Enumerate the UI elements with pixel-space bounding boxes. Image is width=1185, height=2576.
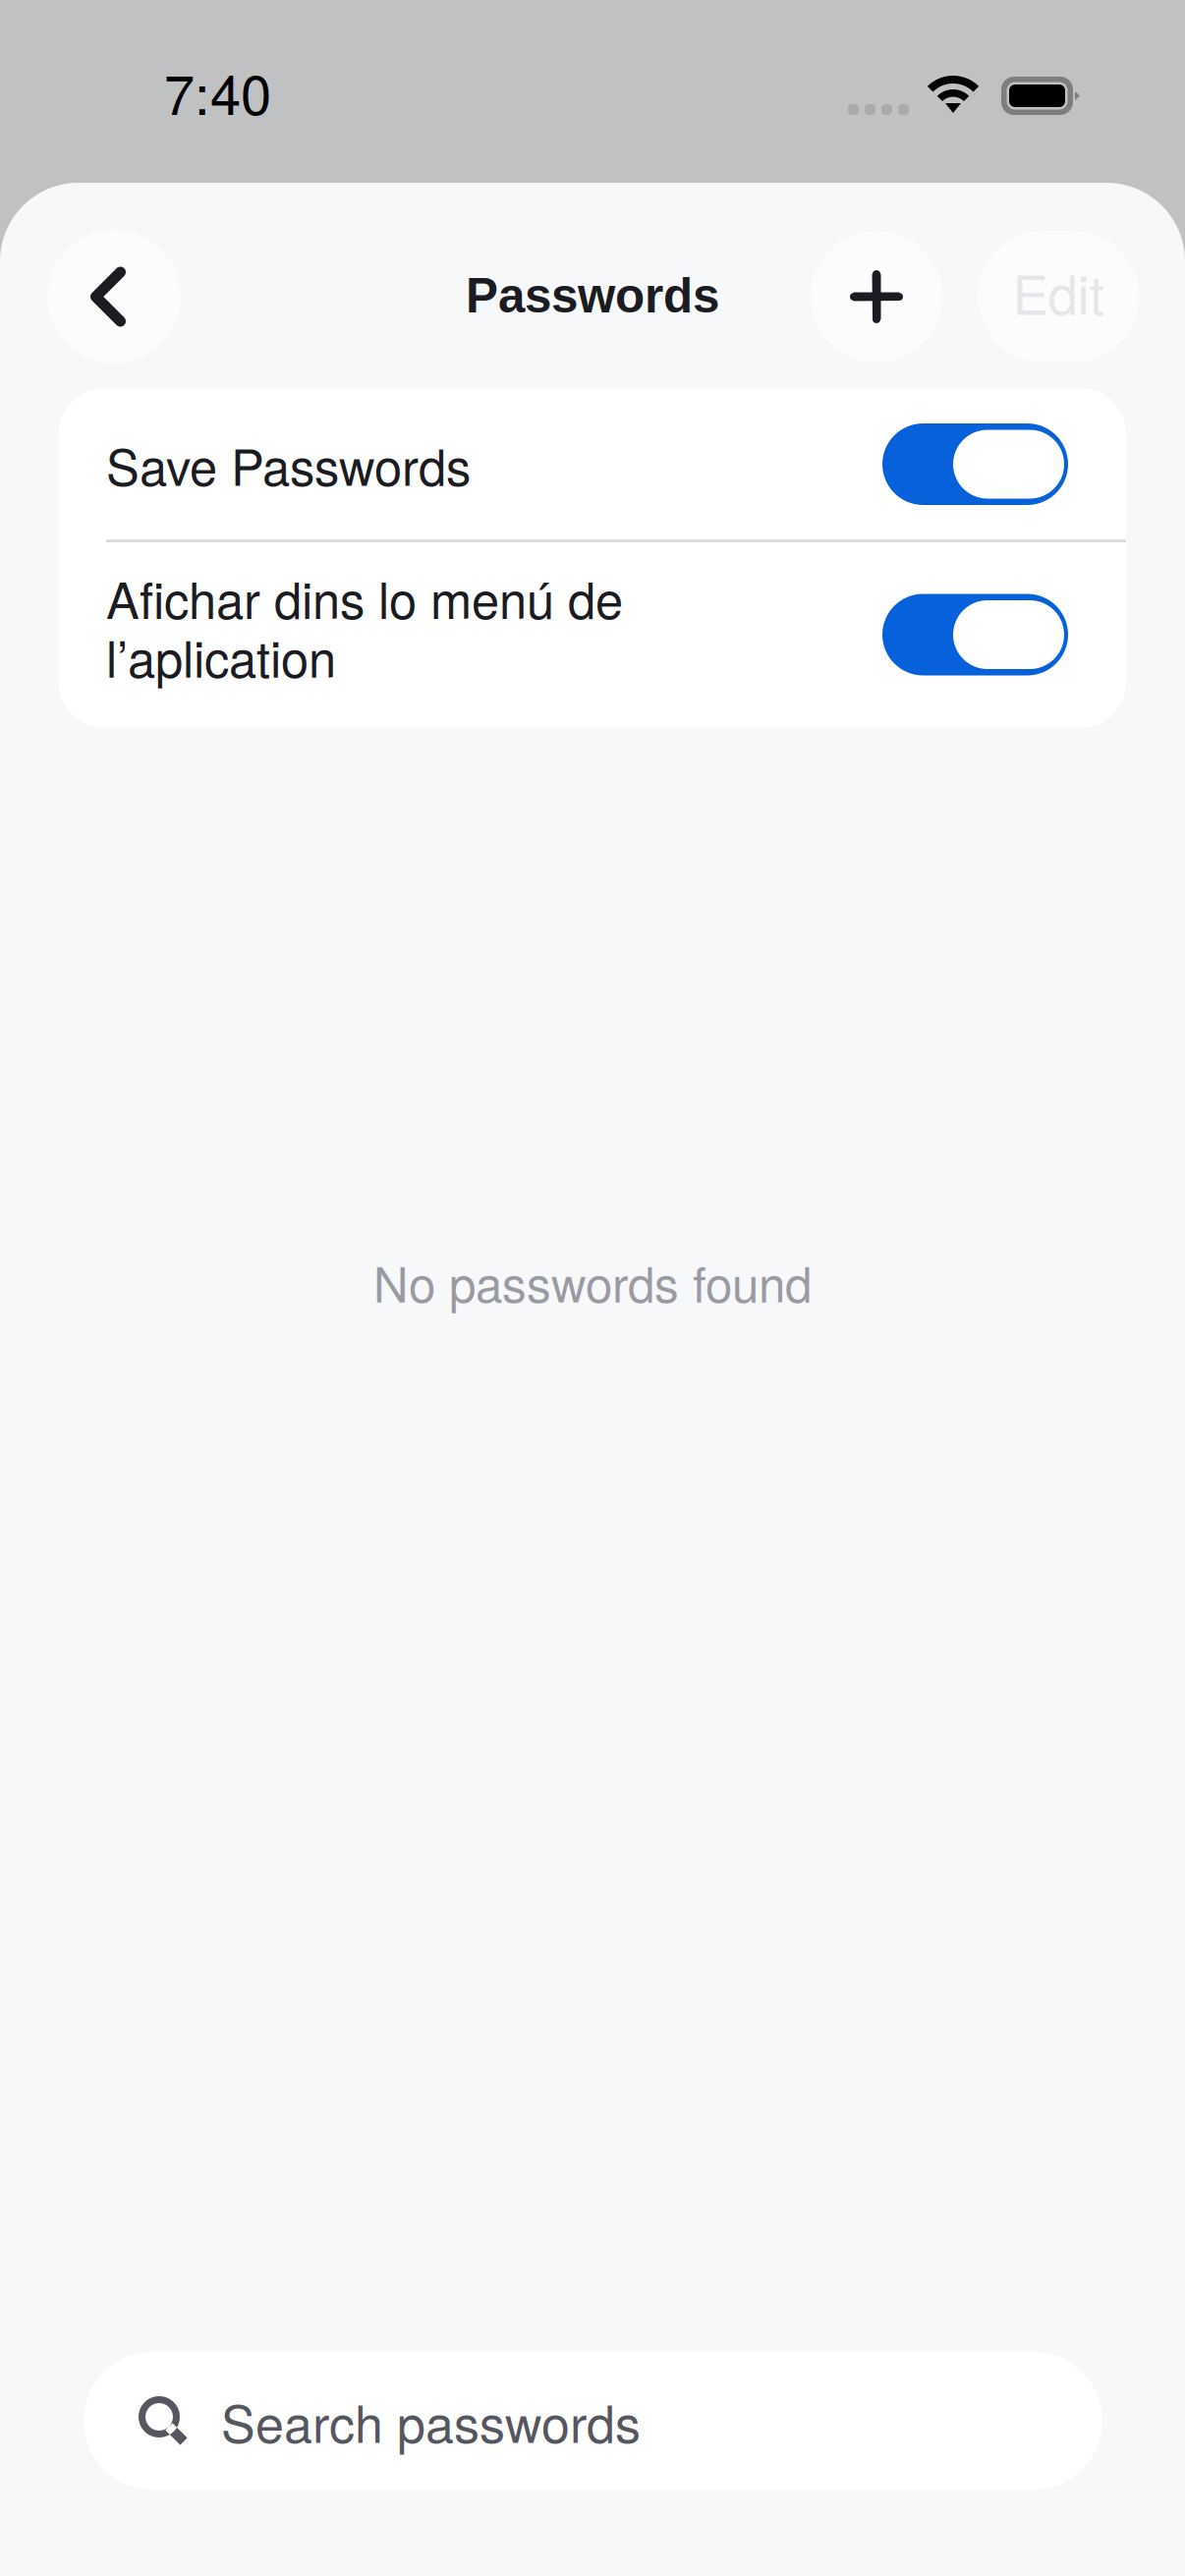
- staticText: 7:40: [164, 52, 271, 131]
- staticText: Passwords: [466, 269, 719, 323]
- staticText: Search passwords: [221, 2384, 641, 2457]
- button[interactable]: Save Passwords: [59, 389, 1126, 539]
- staticText: Afichar dins lo menú de l’aplication: [106, 562, 623, 692]
- staticText: Save Passwords: [106, 429, 471, 500]
- button[interactable]: Edit: [978, 231, 1139, 363]
- staticText: Edit: [1013, 253, 1104, 330]
- button[interactable]: Search passwords: [84, 2352, 1102, 2490]
- button[interactable]: Add password: [811, 231, 942, 363]
- button[interactable]: Afichar dins lo menú de l’aplication: [59, 542, 1126, 727]
- button[interactable]: Back: [47, 230, 181, 364]
- staticText: No passwords found: [373, 1247, 812, 1316]
